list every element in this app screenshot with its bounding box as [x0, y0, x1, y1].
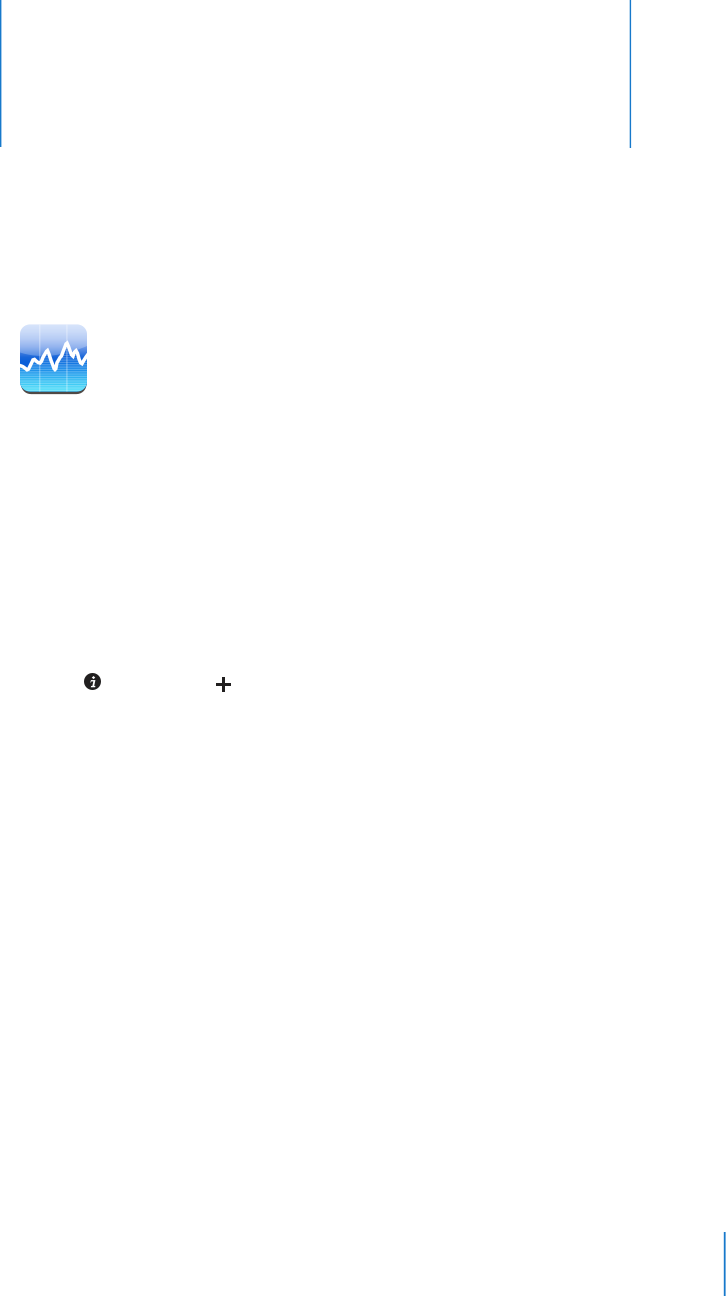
button[interactable]: Add — [216, 677, 231, 692]
button[interactable]: Stocks — [20, 324, 89, 395]
button[interactable]: Info — [84, 673, 101, 690]
